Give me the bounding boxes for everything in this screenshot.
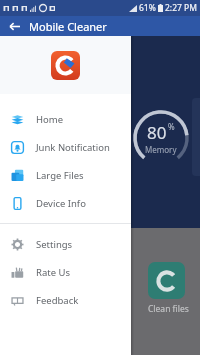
staticText: Feedback (36, 294, 79, 307)
button[interactable]: Junk Notification (0, 133, 131, 161)
button[interactable]: Settings (0, 230, 131, 258)
staticText: Large Files (36, 169, 84, 182)
staticText: 80 (147, 121, 167, 144)
staticText: Clean files (148, 303, 189, 315)
button[interactable]: Back (6, 18, 22, 34)
staticText: Memory (145, 144, 177, 155)
staticText: % (168, 121, 175, 132)
button[interactable]: Large Files (0, 161, 131, 189)
staticText: Mobile Cleaner (29, 19, 107, 34)
staticText: 61% (139, 2, 156, 14)
staticText: 2:27 PM (165, 2, 197, 14)
button[interactable]: Device Info (0, 189, 131, 217)
staticText: Junk Notification (36, 141, 110, 154)
staticText: Home (36, 113, 64, 126)
button[interactable]: Rate Us (0, 258, 131, 286)
button[interactable]: Feedback (0, 286, 131, 314)
button[interactable]: Home (0, 105, 131, 133)
staticText: Device Info (36, 197, 86, 210)
staticText: Settings (36, 238, 73, 251)
staticText: Rate Us (36, 266, 70, 279)
button[interactable]: Clean files (148, 262, 185, 299)
